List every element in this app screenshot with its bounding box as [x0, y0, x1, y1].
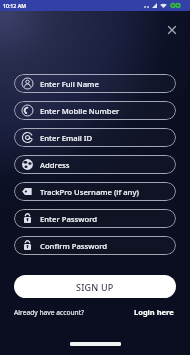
- staticText: 10:12 AM: [3, 2, 26, 9]
- staticText: Confirm Password: [40, 241, 108, 251]
- staticText: Already have account?: [14, 308, 85, 317]
- button[interactable]: Enter Mobile Number: [14, 101, 176, 120]
- button[interactable]: Enter Password: [14, 209, 176, 228]
- staticText: Address: [40, 160, 70, 170]
- staticText: TrackPro Username (if any): [40, 187, 139, 197]
- staticText: SIGN UP: [76, 281, 114, 293]
- button[interactable]: [167, 25, 177, 35]
- staticText: Enter Full Name: [40, 79, 99, 89]
- staticText: Enter Email ID: [40, 133, 93, 143]
- staticText: Enter Password: [40, 214, 98, 224]
- button[interactable]: Confirm Password: [14, 236, 176, 255]
- button[interactable]: Login here: [134, 307, 174, 317]
- button[interactable]: TrackPro Username (if any): [14, 182, 176, 201]
- button[interactable]: Address: [14, 155, 176, 174]
- button[interactable]: SIGN UP: [14, 275, 176, 298]
- staticText: Enter Mobile Number: [40, 106, 120, 116]
- button[interactable]: Enter Full Name: [14, 74, 176, 93]
- button[interactable]: Enter Email ID: [14, 128, 176, 147]
